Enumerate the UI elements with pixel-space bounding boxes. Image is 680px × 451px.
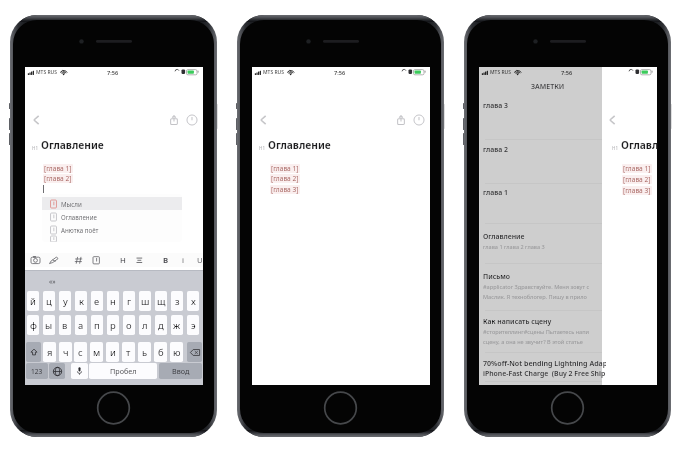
staticText: ч [63,346,69,359]
button[interactable]: H [119,253,126,267]
button[interactable]: [глава 2] [623,175,651,184]
staticText: B [163,255,169,266]
staticText: к [79,295,84,308]
button[interactable]: б [154,342,167,362]
button[interactable]: т [122,342,135,362]
button[interactable]: о [123,315,135,335]
button[interactable]: Dictation [71,363,88,379]
button[interactable]: ж [171,315,183,335]
staticText: ш [141,295,150,308]
button[interactable]: [глава 3] [623,186,651,195]
button[interactable]: Анютка поёт [50,223,182,236]
staticText: Письмо [483,272,510,281]
staticText: я [47,346,53,359]
staticText: MTS RUS [490,69,512,76]
staticText: Оглавл [621,138,659,152]
button[interactable]: Мысли [50,197,182,210]
button[interactable]: й [27,291,39,311]
staticText: Пробел [110,366,137,376]
button[interactable]: Share [395,114,407,126]
button[interactable]: Оглавление [479,230,602,254]
button[interactable]: [глава 2] [271,174,299,183]
staticText: Оглавление [41,138,104,152]
button[interactable]: i [180,253,187,267]
button[interactable]: Info [186,114,198,126]
button[interactable]: д [155,315,167,335]
button[interactable]: [глава 1] [623,164,651,173]
button[interactable]: Пробел [89,363,157,379]
staticText: H1 [32,145,39,151]
button[interactable]: в [59,315,71,335]
button[interactable]: Оглавление [50,210,182,223]
button[interactable]: Back [606,113,620,127]
staticText: Оглавление [61,213,97,221]
button[interactable]: з [171,291,183,311]
button[interactable]: [глава 2] [44,174,72,183]
staticText: глава 1 глава 2 глава 3 [483,243,545,251]
button[interactable]: глава 3 [479,99,602,129]
button[interactable]: е [91,291,103,311]
staticText: м [93,346,101,359]
button[interactable]: п [91,315,103,335]
button[interactable]: к [75,291,87,311]
button[interactable]: х [187,291,199,311]
button[interactable]: ь [138,342,151,362]
button[interactable]: Change language [49,363,65,379]
staticText: с [78,346,83,359]
staticText: iPhone-Fast Charge (Buy 2 Free Ship [483,369,606,378]
staticText: [глава 2] [44,174,72,183]
button[interactable]: ы [43,315,55,335]
button[interactable]: ф [27,315,39,335]
staticText: сцену, а она не звучит? В этой статье [483,338,585,346]
staticText: н [110,295,116,308]
button[interactable]: с [74,342,87,362]
button[interactable]: [глава 1] [271,164,299,173]
button[interactable]: Backspace [187,342,202,362]
staticText: [глава 1] [44,164,72,173]
button[interactable]: [глава 1] [44,164,72,173]
button[interactable]: Ввод [159,363,202,379]
button[interactable] [50,236,182,242]
button[interactable]: глава 2 [479,143,602,173]
button[interactable]: Share [168,114,180,126]
button[interactable]: ц [43,291,55,311]
staticText: а [78,319,84,332]
button[interactable]: Письмо [479,270,602,302]
button[interactable]: Back [30,113,44,127]
button[interactable]: [глава 3] [271,185,299,194]
button[interactable]: ю [170,342,183,362]
button[interactable]: 123 [26,363,48,379]
button[interactable]: U [196,253,203,267]
staticText: Как написать сцену [483,317,552,326]
staticText: Анютка поёт [61,226,99,234]
button[interactable]: э [187,315,199,335]
button[interactable]: н [107,291,119,311]
button[interactable]: Shift [26,342,41,362]
button[interactable]: 70%off-Not bending Lightning Adapt [479,356,602,378]
button[interactable]: глава 1 [479,186,602,216]
staticText: х [191,295,196,308]
button[interactable]: у [59,291,71,311]
button[interactable]: м [90,342,103,362]
button[interactable]: я [43,342,56,362]
staticText: 7:56 [334,69,346,77]
staticText: е [94,295,100,308]
button[interactable]: ч [59,342,72,362]
staticText: 123 [31,367,43,376]
button[interactable]: а [75,315,87,335]
button[interactable]: Как написать сцену [479,315,602,347]
staticText: i [182,255,185,266]
staticText: Ввод [172,366,190,376]
button[interactable]: и [106,342,119,362]
button[interactable]: ш [139,291,151,311]
button[interactable]: B [162,253,169,267]
button[interactable]: Info [413,114,425,126]
button[interactable]: г [123,291,135,311]
button[interactable]: Back [257,113,271,127]
button[interactable]: щ [155,291,167,311]
staticText: [глава 3] [623,186,651,195]
button[interactable]: л [139,315,151,335]
staticText: U [197,255,203,266]
button[interactable]: р [107,315,119,335]
staticText: щ [157,295,166,308]
